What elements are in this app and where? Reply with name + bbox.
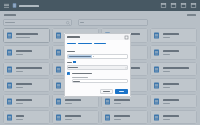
button[interactable] <box>3 19 72 26</box>
button[interactable] <box>150 45 197 60</box>
button[interactable] <box>101 28 148 43</box>
button[interactable] <box>67 65 128 70</box>
button[interactable] <box>100 89 113 94</box>
button[interactable] <box>0 0 200 125</box>
button[interactable] <box>67 43 106 44</box>
button[interactable]: Menu <box>3 2 10 9</box>
button[interactable] <box>101 62 148 76</box>
button[interactable] <box>72 79 128 83</box>
button[interactable] <box>150 28 197 43</box>
button[interactable] <box>115 89 128 94</box>
button[interactable]: Grid view <box>160 2 167 9</box>
button[interactable] <box>101 45 148 60</box>
button[interactable] <box>52 110 99 124</box>
button[interactable] <box>3 45 50 60</box>
button[interactable] <box>78 19 148 26</box>
button[interactable] <box>52 62 99 76</box>
button[interactable]: Close <box>124 35 128 39</box>
button[interactable] <box>101 94 148 108</box>
button[interactable] <box>101 110 148 124</box>
button[interactable]: Help <box>180 2 187 9</box>
button[interactable] <box>67 54 128 59</box>
button[interactable] <box>52 94 99 108</box>
button[interactable] <box>101 78 148 92</box>
button[interactable] <box>150 94 197 108</box>
button[interactable] <box>52 28 99 43</box>
button[interactable] <box>3 110 50 124</box>
button[interactable] <box>52 45 99 60</box>
button[interactable] <box>3 94 50 108</box>
button[interactable] <box>3 62 50 76</box>
button[interactable] <box>3 28 50 43</box>
button[interactable] <box>150 110 197 124</box>
button[interactable] <box>52 78 99 92</box>
button[interactable]: Notifications <box>170 2 177 9</box>
button[interactable] <box>150 62 197 76</box>
button[interactable] <box>150 78 197 92</box>
button[interactable] <box>67 72 92 75</box>
button[interactable] <box>3 78 50 92</box>
button[interactable]: Account <box>190 2 197 9</box>
